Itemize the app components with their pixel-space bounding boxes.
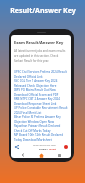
staticText: Sarkari Result Info Team <box>33 144 56 147</box>
button[interactable]: Notifications <box>64 145 68 149</box>
button[interactable]: UP Police Constable Recruitment Result 2… <box>14 106 68 115</box>
staticText: Exam Result/Answer Key <box>14 40 64 45</box>
staticText: Result/Answer Key <box>10 6 76 16</box>
staticText: sarkari <box>39 147 48 150</box>
button[interactable]: Bihar Police SI Prelims Answer Key Objec… <box>14 115 68 124</box>
button[interactable]: RRB NTPC CBT 2 Answer Key 2024 Download … <box>14 97 68 106</box>
button[interactable]: Recents <box>50 152 68 158</box>
button[interactable]: MP Board 10th 12th Result Declared Today… <box>14 133 68 142</box>
button[interactable]: Share <box>14 144 20 150</box>
button[interactable]: IBPS PO Mains Result Out Now Download Of… <box>14 88 68 97</box>
button[interactable]: UPSC Civil Services Prelims 2024 Result … <box>14 70 68 79</box>
button[interactable]: Home <box>32 152 50 158</box>
staticText: result <box>49 147 56 150</box>
button[interactable]: Rajasthan Patwari Result Declared Check … <box>14 124 68 133</box>
button[interactable]: Back <box>14 152 32 158</box>
button[interactable]: SSC CGL Tier 1 Answer Key 2024 Released … <box>14 79 68 88</box>
staticText: All latest/current jobs and exam results… <box>14 49 68 63</box>
